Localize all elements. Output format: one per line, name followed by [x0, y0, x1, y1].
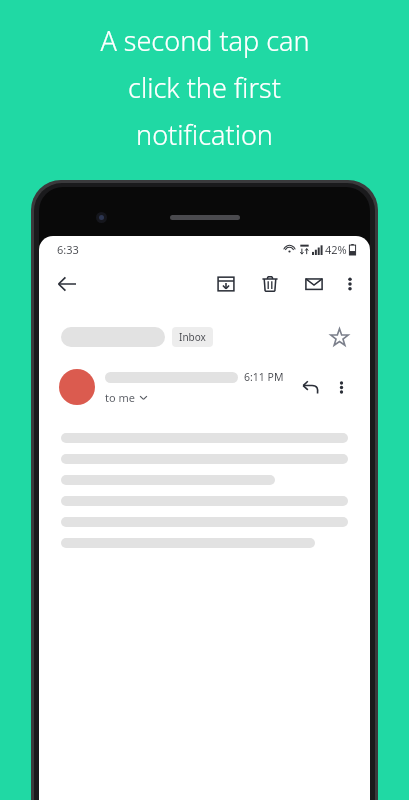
staticText: A second tap can: [100, 22, 310, 59]
staticText: to me: [105, 390, 135, 405]
button[interactable]: Archive: [208, 266, 244, 302]
staticText: 42%: [325, 242, 347, 257]
button[interactable]: Delete: [252, 266, 288, 302]
button[interactable]: [59, 369, 95, 405]
staticText: click the first: [128, 69, 281, 106]
button[interactable]: Back: [49, 266, 85, 302]
button[interactable]: More options: [326, 372, 356, 402]
button[interactable]: More options: [334, 266, 366, 302]
staticText: Inbox: [179, 330, 206, 344]
staticText: 6:33: [57, 242, 79, 257]
staticText: 6:11 PM: [244, 370, 284, 384]
button[interactable]: Mark unread: [296, 266, 332, 302]
button[interactable]: Reply: [294, 371, 326, 403]
button[interactable]: Inbox: [172, 327, 213, 347]
staticText: notification: [136, 116, 273, 153]
button[interactable]: Star: [322, 320, 356, 354]
button[interactable]: to me: [105, 390, 148, 405]
